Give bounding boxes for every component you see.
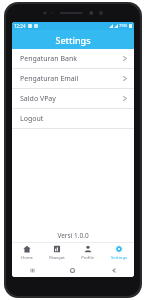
button[interactable]: Pengaturan Bank — [12, 49, 134, 68]
staticText: 75% — [119, 23, 128, 29]
button[interactable]: Recents — [12, 263, 52, 277]
staticText: Saldo VPay — [20, 94, 56, 104]
button[interactable]: Saldo VPay — [12, 89, 134, 108]
button[interactable]: Profile — [72, 242, 103, 263]
button[interactable]: Riwayat — [42, 242, 72, 263]
staticText: Profile — [81, 255, 94, 261]
staticText: Home — [21, 255, 33, 261]
button[interactable]: Logout — [12, 109, 134, 128]
button[interactable]: Home — [12, 242, 42, 263]
staticText: Pengaturan Email — [20, 74, 79, 84]
button[interactable]: Settings — [103, 242, 134, 263]
staticText: Pengaturan Bank — [20, 54, 77, 64]
staticText: 12:24 — [14, 23, 26, 29]
button[interactable]: Pengaturan Email — [12, 69, 134, 88]
staticText: Settings — [111, 255, 127, 261]
staticText: Settings — [55, 34, 91, 46]
button[interactable]: Home — [52, 263, 93, 277]
staticText: Versi 1.0.0 — [57, 231, 89, 240]
staticText: Riwayat — [49, 255, 65, 261]
button[interactable]: Back — [93, 263, 134, 277]
staticText: Logout — [20, 114, 44, 124]
